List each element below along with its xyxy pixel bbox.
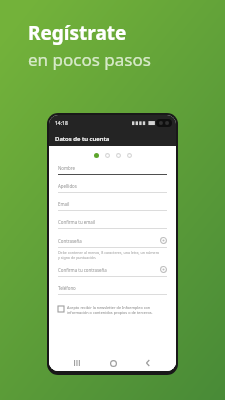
button[interactable]: Acepto recibir la newsletter de Infoempl… [58, 305, 167, 315]
button[interactable]: Recientes [70, 356, 84, 370]
staticText: 14:18 [55, 120, 68, 127]
button[interactable]: Paso 2 [105, 153, 110, 158]
staticText: Acepto recibir la newsletter de Infoempl… [67, 305, 153, 315]
staticText: Contraseña [58, 238, 160, 244]
staticText: Datos de tu cuenta [55, 135, 110, 143]
button[interactable]: Paso 4 [127, 153, 132, 158]
button[interactable]: Confirma tu contraseña [58, 266, 167, 285]
staticText: Confirma tu contraseña [58, 267, 160, 273]
button[interactable]: Atrás [141, 356, 155, 370]
button[interactable]: Mostrar contraseña [160, 266, 167, 273]
button[interactable]: Nombre [58, 165, 167, 183]
staticText: Teléfono [58, 285, 167, 291]
button[interactable]: Mostrar contraseña [160, 237, 167, 244]
button[interactable]: Paso 3 [116, 153, 121, 158]
button[interactable]: Teléfono [58, 285, 167, 303]
button[interactable]: Contraseña [58, 237, 167, 250]
button[interactable]: Datos de tu cuenta [49, 131, 176, 146]
button[interactable]: Email [58, 201, 167, 219]
staticText: Regístrate [28, 20, 127, 46]
staticText: Debe contener al menos, 8 caracteres, un… [58, 250, 160, 260]
staticText: Confirma tu email [58, 219, 167, 225]
staticText: Nombre [58, 165, 167, 171]
staticText: Apellidos [58, 183, 167, 189]
button[interactable]: Confirma tu email [58, 219, 167, 237]
button[interactable]: Apellidos [58, 183, 167, 201]
staticText: Email [58, 201, 167, 207]
button[interactable]: Paso 1 [94, 153, 99, 158]
staticText: en pocos pasos [28, 48, 151, 71]
button[interactable]: Inicio [106, 356, 120, 370]
